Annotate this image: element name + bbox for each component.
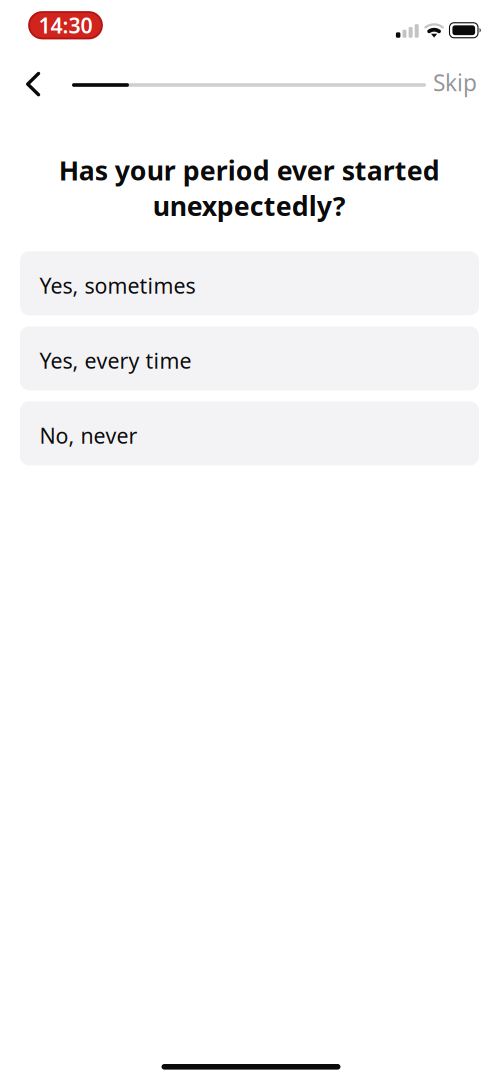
button[interactable]: Yes, every time xyxy=(20,326,479,390)
button[interactable]: Back xyxy=(0,60,63,104)
staticText: 14:30 xyxy=(38,11,92,39)
button[interactable]: Skip xyxy=(426,60,498,104)
button[interactable]: Yes, sometimes xyxy=(20,251,479,315)
staticText: Skip xyxy=(433,67,477,97)
staticText: Yes, every time xyxy=(39,346,191,375)
staticText: No, never xyxy=(39,421,137,450)
staticText: Has your period ever started unexpectedl… xyxy=(58,152,439,223)
button[interactable]: No, never xyxy=(20,401,479,465)
staticText: Yes, sometimes xyxy=(39,271,195,300)
